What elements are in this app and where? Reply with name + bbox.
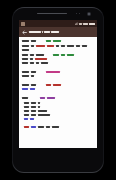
button[interactable]: Navigate up	[19, 27, 29, 37]
button[interactable]	[29, 31, 93, 33]
